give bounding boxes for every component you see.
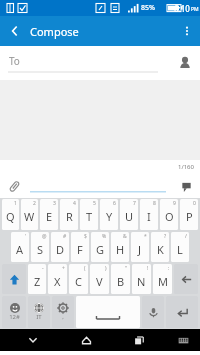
staticText: K (157, 242, 164, 257)
staticText: ! (147, 265, 149, 272)
staticText: PM (191, 6, 199, 13)
staticText: To (9, 54, 20, 68)
button[interactable]: ? (151, 232, 169, 262)
button[interactable]: % (91, 232, 109, 262)
button[interactable]: ( (69, 264, 88, 294)
button[interactable]: Hide keyboard (6, 329, 60, 351)
staticText: Q (6, 209, 15, 224)
button[interactable]: * (131, 232, 149, 262)
staticText: 6:10 (174, 3, 190, 14)
button[interactable]: Settings (52, 296, 74, 328)
button[interactable]: Keyboard (166, 329, 200, 351)
button[interactable]: / (171, 232, 189, 262)
button[interactable]: Shift (2, 264, 26, 294)
button[interactable]: 0 (180, 199, 198, 230)
button[interactable]: + (48, 264, 67, 294)
staticText: 2 (33, 200, 36, 207)
button[interactable]: To (0, 46, 200, 80)
staticText: P (186, 209, 193, 224)
staticText: N (137, 274, 146, 289)
button[interactable]: 5 (80, 199, 98, 230)
staticText: 8 (153, 200, 156, 207)
button[interactable]: Send (172, 174, 200, 198)
button[interactable]: 7 (120, 199, 138, 230)
staticText: , (62, 313, 64, 321)
staticText: 1 (14, 200, 17, 207)
button[interactable]: - (28, 264, 46, 294)
staticText: 3 (53, 200, 56, 207)
button[interactable]: 8 (140, 199, 158, 230)
button[interactable]: 6 (100, 199, 118, 230)
button[interactable]: 1 (2, 199, 19, 230)
staticText: 0 (193, 200, 196, 207)
staticText: Compose (30, 24, 79, 39)
staticText: / (185, 233, 187, 240)
staticText: A (16, 242, 24, 257)
staticText: D (56, 242, 65, 257)
staticText: ' (25, 233, 27, 240)
staticText: I (147, 209, 151, 224)
staticText: $ (84, 233, 87, 240)
staticText: # (63, 233, 67, 240)
staticText: C (75, 274, 82, 289)
staticText: M (158, 274, 168, 289)
button[interactable]: ) (90, 264, 109, 294)
staticText: O (165, 209, 174, 224)
staticText: 4 (73, 200, 76, 207)
staticText: & (123, 233, 127, 240)
button[interactable]: 4 (60, 199, 78, 230)
button[interactable]: & (111, 232, 129, 262)
button[interactable]: Enter (166, 296, 198, 328)
staticText: B (117, 274, 125, 289)
button[interactable]: Symbols (2, 296, 26, 328)
button[interactable]: 2 (21, 199, 38, 230)
staticText: Z (34, 274, 41, 289)
button[interactable]: Space (76, 296, 140, 328)
staticText: R (66, 209, 73, 224)
staticText: 1/160 (178, 163, 194, 171)
staticText: V (96, 274, 103, 289)
button[interactable]: Home (60, 329, 113, 351)
button[interactable]: Language (28, 296, 50, 328)
staticText: L (177, 242, 183, 257)
staticText: @ (42, 233, 47, 240)
staticText: T (86, 209, 93, 224)
staticText: ) (105, 265, 107, 272)
staticText: ( (84, 265, 86, 272)
staticText: * (144, 233, 147, 240)
button[interactable]: More options (174, 16, 200, 46)
button[interactable]: Attach (0, 174, 28, 198)
button[interactable]: Voice input (142, 296, 164, 328)
button[interactable]: 9 (160, 199, 178, 230)
staticText: J (138, 242, 142, 257)
button[interactable]: ! (132, 264, 151, 294)
staticText: E (46, 209, 53, 224)
staticText: H (116, 242, 125, 257)
button[interactable]: " (111, 264, 130, 294)
staticText: X (54, 274, 61, 289)
staticText: 85% (141, 3, 155, 13)
staticText: 7 (133, 200, 136, 207)
staticText: W (24, 209, 35, 224)
button[interactable]: 3 (40, 199, 58, 230)
staticText: Y (106, 209, 113, 224)
staticText: IT (36, 313, 42, 321)
button[interactable]: Back (0, 16, 30, 46)
button[interactable]: Pick contact (170, 46, 200, 80)
staticText: + (62, 265, 65, 272)
staticText: S (37, 242, 44, 257)
button[interactable]: Recent apps (113, 329, 166, 351)
button[interactable]: Backspace (174, 264, 198, 294)
button[interactable]: ' (11, 232, 29, 262)
staticText: 6 (113, 200, 116, 207)
staticText: - (42, 265, 44, 272)
staticText: G (96, 242, 105, 257)
button[interactable]: : (153, 264, 172, 294)
button[interactable]: $ (71, 232, 89, 262)
button[interactable]: @ (31, 232, 49, 262)
button[interactable]: # (51, 232, 69, 262)
staticText: : (168, 265, 170, 272)
staticText: U (125, 209, 134, 224)
staticText: 12# (9, 313, 20, 321)
staticText: 9 (173, 200, 176, 207)
